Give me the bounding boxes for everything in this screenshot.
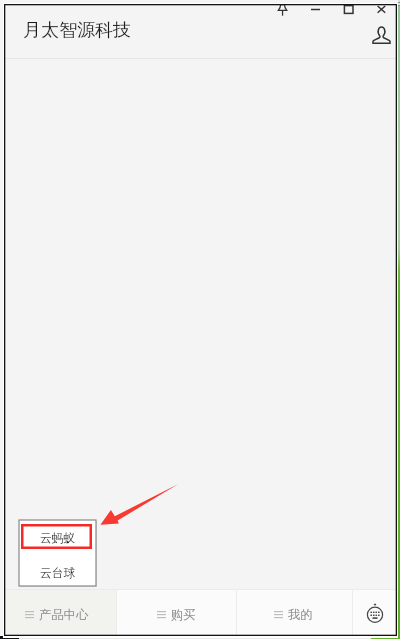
button[interactable]: 购买 xyxy=(117,589,236,636)
staticText: 购买 xyxy=(171,607,196,622)
button[interactable]: Maximize xyxy=(335,0,362,19)
button[interactable]: Minimize xyxy=(302,0,329,19)
button[interactable]: Keyboard input xyxy=(353,589,397,636)
button[interactable]: 我的 xyxy=(237,589,352,636)
staticText: 云蚂蚁 xyxy=(40,531,76,546)
staticText: 产品中心 xyxy=(39,607,89,622)
button[interactable]: Pin window xyxy=(269,0,296,19)
staticText: 我的 xyxy=(288,607,313,622)
button[interactable]: 产品中心 xyxy=(4,589,116,636)
button[interactable]: Account xyxy=(371,25,392,46)
staticText: 云台球 xyxy=(40,566,76,581)
button[interactable]: 云台球 xyxy=(19,557,96,586)
staticText: 月太智源科技 xyxy=(23,19,131,42)
button[interactable]: 云蚂蚁 xyxy=(19,520,96,557)
button[interactable]: Close xyxy=(368,0,395,19)
